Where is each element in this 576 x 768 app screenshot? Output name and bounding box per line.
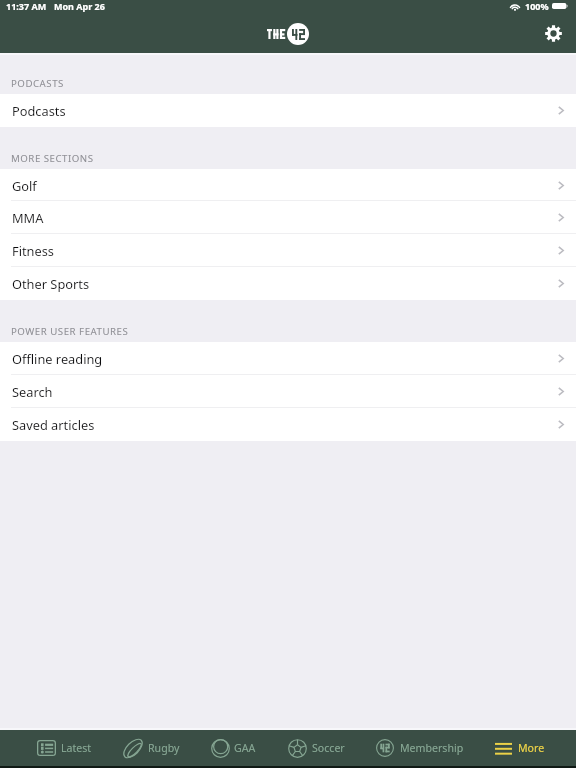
staticText: MMA (12, 209, 44, 226)
staticText: More (518, 741, 545, 755)
staticText: Other Sports (12, 275, 90, 292)
staticText: POWER USER FEATURES (11, 325, 129, 338)
button[interactable]: Settings (541, 21, 565, 45)
staticText: Saved articles (12, 416, 95, 433)
staticText: Membership (400, 741, 464, 755)
button[interactable]: MMA (0, 201, 576, 234)
staticText: Mon Apr 26 (54, 0, 105, 12)
staticText: Podcasts (12, 102, 66, 119)
staticText: Search (12, 383, 53, 400)
button[interactable]: More (495, 730, 545, 766)
button[interactable]: Latest (37, 730, 92, 766)
button[interactable]: Podcasts (0, 94, 576, 127)
staticText: Latest (61, 741, 92, 755)
button[interactable]: GAA (211, 730, 256, 766)
button[interactable]: Membership (376, 730, 464, 766)
button[interactable]: Rugby (123, 730, 180, 766)
staticText: Rugby (148, 741, 180, 755)
staticText: MORE SECTIONS (11, 152, 94, 165)
button[interactable]: Saved articles (0, 408, 576, 441)
staticText: Soccer (312, 741, 345, 755)
button[interactable]: Golf (0, 169, 576, 201)
staticText: 100% (525, 0, 549, 12)
button[interactable]: Search (0, 375, 576, 408)
staticText: 11:37 AM (6, 0, 47, 12)
staticText: Offline reading (12, 350, 103, 367)
button[interactable]: Soccer (288, 730, 345, 766)
staticText: Fitness (12, 242, 54, 259)
button[interactable]: The 42 (267, 23, 309, 45)
staticText: GAA (234, 741, 256, 755)
staticText: Golf (12, 177, 37, 194)
button[interactable]: Offline reading (0, 342, 576, 375)
staticText: PODCASTS (11, 77, 64, 90)
button[interactable]: Other Sports (0, 267, 576, 300)
button[interactable]: Fitness (0, 234, 576, 267)
